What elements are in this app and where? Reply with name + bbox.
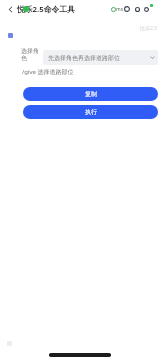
staticText: ms <box>116 6 124 13</box>
staticText: 悦乐2.5 <box>140 25 158 32</box>
staticText: 悦乐2.5命令工具 <box>17 4 75 15</box>
staticText: /give 选择道路部位 <box>22 68 74 76</box>
staticText: 先选择角色再选择道路部位 <box>48 54 120 62</box>
staticText: 选择角色 <box>21 47 39 62</box>
button[interactable]: 复制 <box>23 87 158 101</box>
button[interactable]: 先选择角色再选择道路部位 <box>43 50 158 65</box>
staticText: 复制 <box>85 90 97 98</box>
button[interactable]: 执行 <box>23 105 158 119</box>
staticText: 执行 <box>85 108 97 116</box>
button[interactable]: Back <box>5 4 16 15</box>
